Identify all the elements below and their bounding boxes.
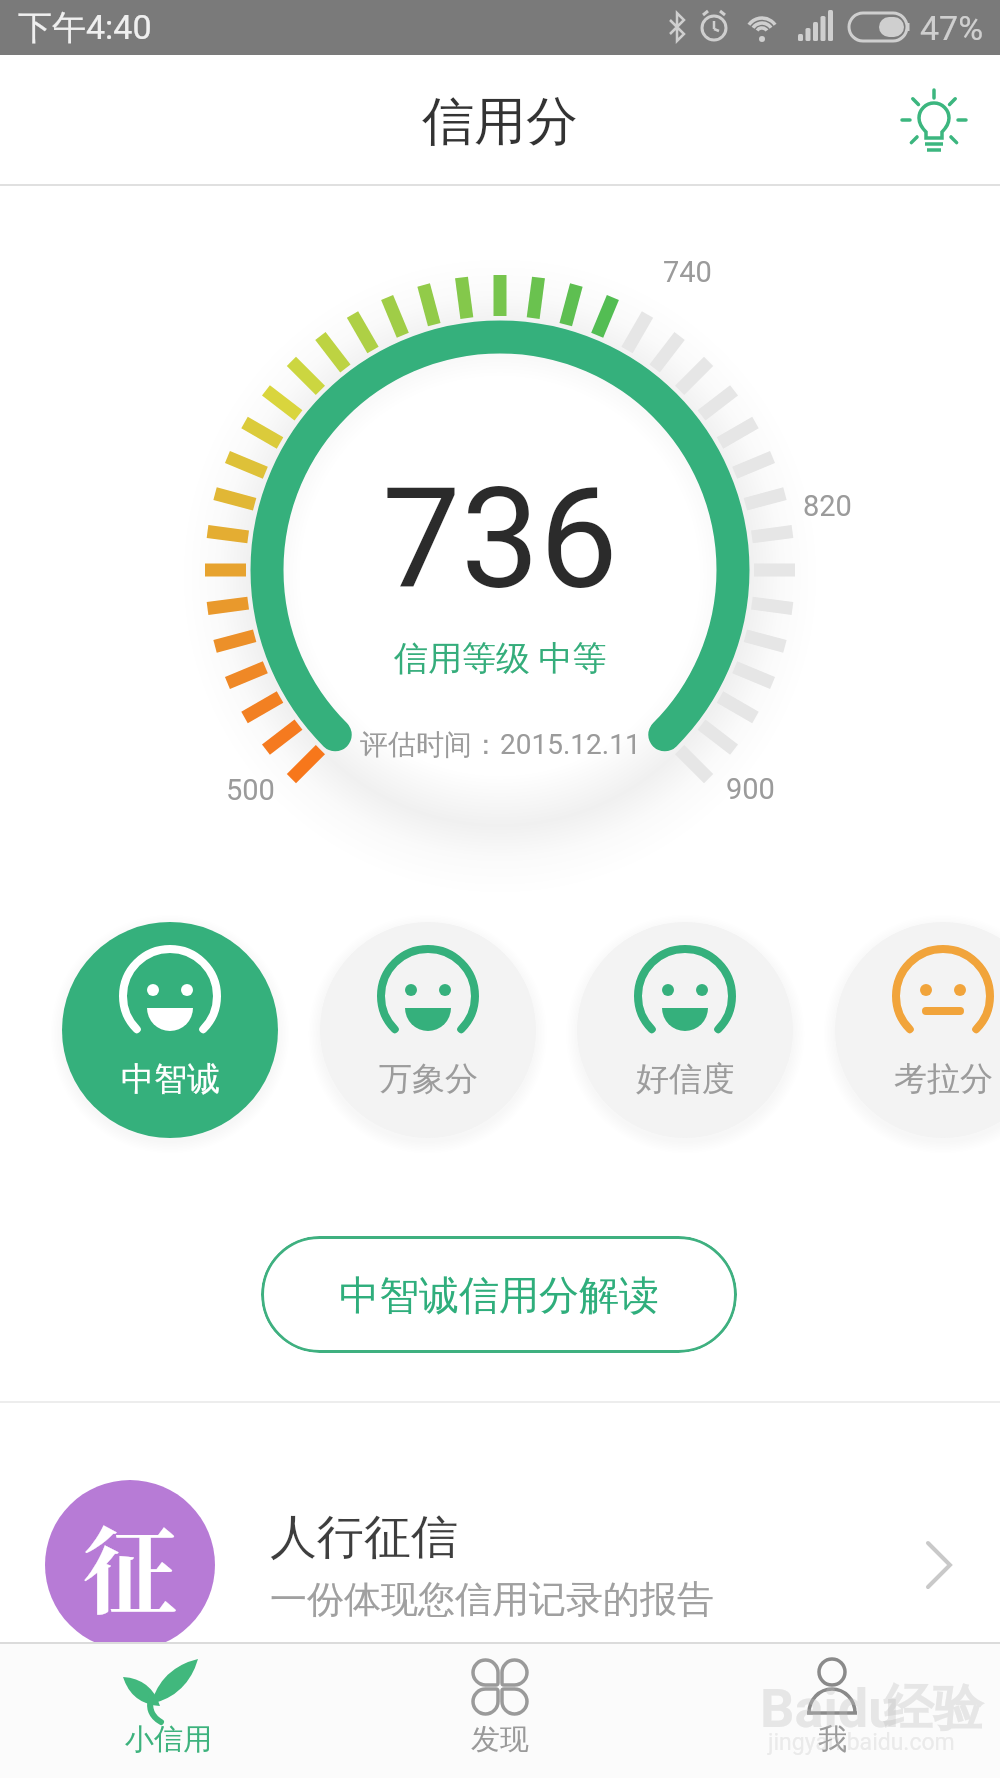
staticText: 信用等级 中等	[394, 637, 607, 680]
staticText: 经验	[883, 1677, 983, 1740]
button[interactable]: 我	[699, 1644, 965, 1778]
staticText: 740	[663, 255, 712, 289]
staticText: 评估时间：2015.12.11	[360, 727, 641, 762]
staticText: Baidu	[760, 1677, 899, 1740]
button[interactable]: 考拉分	[835, 922, 1000, 1138]
staticText: 中智诚信用分解读	[339, 1270, 659, 1320]
staticText: 47%	[920, 8, 984, 48]
staticText: 好信度	[636, 1058, 735, 1100]
staticText: 小信用	[125, 1721, 212, 1758]
button[interactable]	[897, 84, 973, 160]
staticText: 万象分	[379, 1058, 478, 1100]
staticText: 900	[726, 772, 775, 806]
button[interactable]: 万象分	[320, 922, 536, 1138]
button[interactable]: 小信用	[35, 1644, 301, 1778]
staticText: 发现	[471, 1721, 529, 1758]
staticText: 736	[382, 457, 619, 621]
staticText: 考拉分	[894, 1058, 993, 1100]
staticText: 820	[803, 489, 852, 523]
button[interactable]: 发现	[367, 1644, 633, 1778]
staticText: 一份体现您信用记录的报告	[270, 1576, 714, 1623]
button[interactable]: 征	[0, 1403, 1000, 1643]
staticText: 下午4:40	[18, 6, 152, 49]
button[interactable]: 中智诚信用分解读	[261, 1236, 737, 1353]
staticText: 征	[83, 1498, 178, 1633]
staticText: 500	[226, 773, 275, 807]
button[interactable]: 好信度	[577, 922, 793, 1138]
staticText: 我	[818, 1721, 847, 1758]
button[interactable]: 中智诚	[62, 922, 278, 1138]
staticText: 信用分	[422, 89, 578, 155]
staticText: jingyan.baidu.com	[768, 1729, 955, 1756]
staticText: 人行征信	[270, 1508, 458, 1567]
staticText: 中智诚	[121, 1058, 220, 1100]
